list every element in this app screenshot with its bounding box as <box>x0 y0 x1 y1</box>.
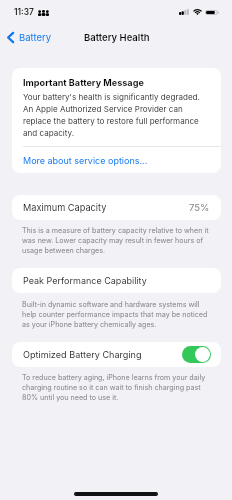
staticText: Your battery's health is significantly d… <box>23 92 211 138</box>
staticText: Important Battery Message <box>23 77 144 88</box>
staticText: Maximum Capacity <box>23 202 107 213</box>
staticText: Peak Performance Capability <box>23 275 147 286</box>
staticText: More about service options... <box>23 155 148 166</box>
button[interactable]: Optimized Battery Charging toggle <box>182 346 211 363</box>
button[interactable]: Maximum Capacity <box>12 195 221 220</box>
staticText: To reduce battery aging, iPhone learns f… <box>22 373 212 402</box>
button[interactable]: Optimized Battery Charging <box>12 342 221 367</box>
button[interactable]: More about service options... <box>12 147 221 173</box>
staticText: 11:37 <box>14 7 34 17</box>
staticText: 75% <box>189 202 210 213</box>
staticText: This is a measure of battery capacity re… <box>22 226 212 255</box>
staticText: Built-in dynamic software and hardware s… <box>22 300 212 329</box>
button[interactable]: Battery <box>2 28 56 46</box>
staticText: Battery Health <box>84 32 150 43</box>
staticText: Optimized Battery Charging <box>23 349 142 360</box>
staticText: Battery <box>19 32 52 43</box>
button[interactable]: Peak Performance Capability <box>12 268 221 293</box>
